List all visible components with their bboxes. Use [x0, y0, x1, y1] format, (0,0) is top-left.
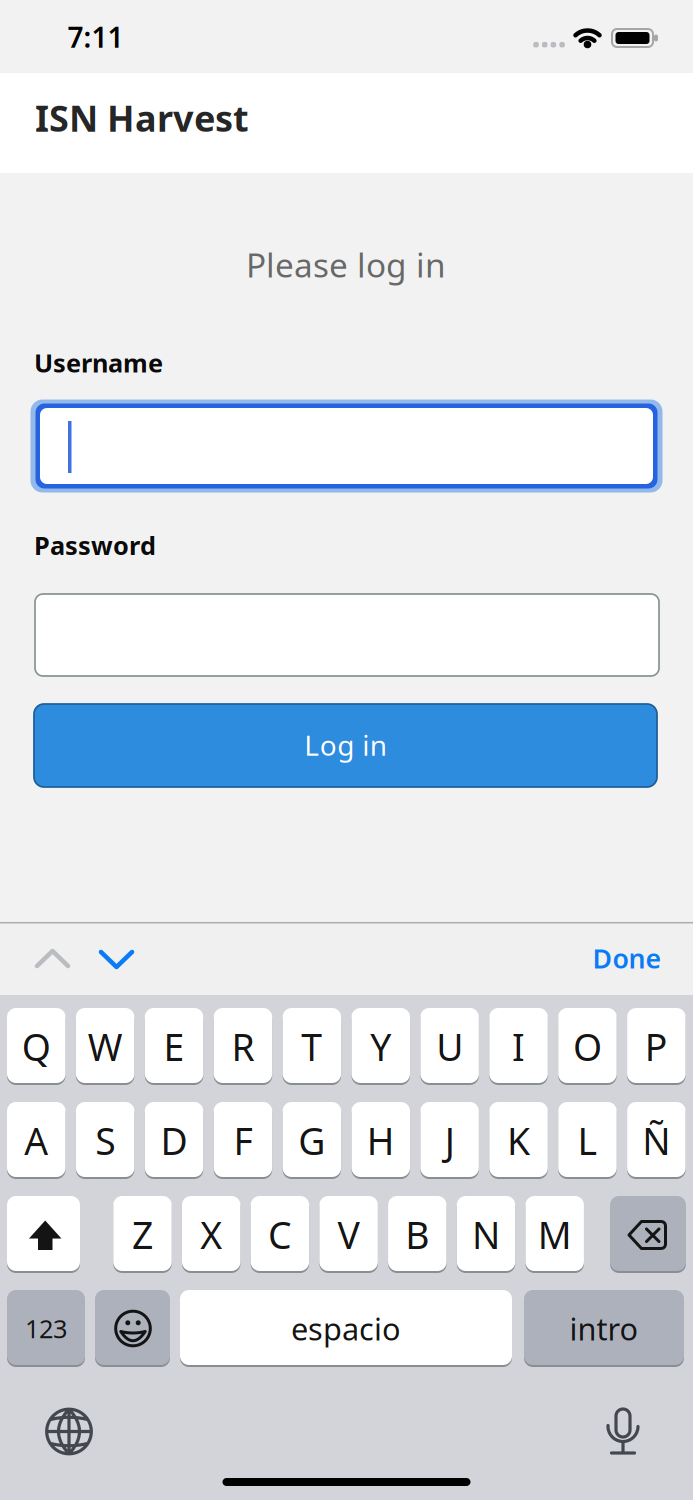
button[interactable]: L [558, 1102, 617, 1177]
button[interactable]: I [489, 1008, 548, 1083]
button[interactable]: O [558, 1008, 617, 1083]
staticText: O [573, 1022, 602, 1071]
staticText: N [472, 1210, 500, 1259]
button[interactable]: Ñ [627, 1102, 686, 1177]
button[interactable]: U [420, 1008, 479, 1083]
staticText: Password [34, 528, 156, 562]
staticText: 123 [25, 1312, 67, 1345]
button[interactable]: Next keyboard [41, 1403, 97, 1459]
button[interactable]: Emoji [95, 1290, 170, 1365]
button[interactable]: Z [113, 1196, 172, 1271]
staticText: Username [34, 346, 163, 379]
staticText: espacio [291, 1308, 401, 1349]
button[interactable]: N [457, 1196, 515, 1271]
staticText: 7:11 [67, 18, 123, 56]
staticText: P [645, 1022, 668, 1071]
staticText: L [577, 1116, 597, 1165]
staticText: R [231, 1022, 254, 1071]
button[interactable]: 123 [7, 1290, 85, 1365]
button[interactable]: Previous field [30, 936, 74, 980]
staticText: ISN Harvest [35, 94, 249, 142]
staticText: G [298, 1116, 325, 1165]
staticText: Q [22, 1022, 51, 1071]
staticText: Ñ [642, 1116, 670, 1165]
staticText: M [538, 1210, 572, 1259]
staticText: Z [132, 1210, 153, 1259]
staticText: intro [569, 1308, 638, 1349]
button[interactable]: P [627, 1008, 686, 1083]
button[interactable]: Shift [7, 1196, 80, 1271]
button[interactable]: S [76, 1102, 134, 1177]
button[interactable]: A [7, 1102, 65, 1177]
button[interactable]: T [283, 1008, 341, 1083]
button[interactable]: Delete [610, 1196, 686, 1271]
staticText: C [268, 1210, 292, 1259]
staticText: T [301, 1022, 322, 1071]
button[interactable]: F [214, 1102, 272, 1177]
staticText: Log in [304, 726, 387, 763]
staticText: A [24, 1116, 48, 1165]
button[interactable]: Password [35, 594, 659, 676]
button[interactable]: B [388, 1196, 447, 1271]
button[interactable]: Next field [94, 937, 138, 981]
button[interactable]: M [525, 1196, 584, 1271]
staticText: S [95, 1116, 115, 1165]
staticText: X [200, 1210, 222, 1259]
button[interactable]: Username [30, 399, 662, 492]
staticText: H [367, 1116, 395, 1165]
staticText: U [436, 1022, 463, 1071]
button[interactable]: W [76, 1008, 134, 1083]
button[interactable]: H [351, 1102, 410, 1177]
staticText: Y [370, 1022, 391, 1071]
button[interactable]: Log in [34, 704, 657, 787]
button[interactable]: espacio [180, 1290, 512, 1365]
button[interactable]: Y [351, 1008, 410, 1083]
button[interactable]: R [214, 1008, 272, 1083]
staticText: Done [592, 940, 661, 976]
button[interactable]: C [251, 1196, 309, 1271]
button[interactable]: intro [524, 1290, 684, 1365]
staticText: V [338, 1210, 360, 1259]
button[interactable]: X [182, 1196, 240, 1271]
staticText: I [512, 1022, 525, 1071]
button[interactable]: E [145, 1008, 203, 1083]
button[interactable]: K [489, 1102, 548, 1177]
staticText: W [88, 1022, 123, 1071]
staticText: D [161, 1116, 188, 1165]
button[interactable]: V [319, 1196, 378, 1271]
button[interactable]: Q [7, 1008, 65, 1083]
staticText: K [507, 1116, 530, 1165]
staticText: F [233, 1116, 252, 1165]
staticText: J [445, 1116, 455, 1165]
staticText: B [405, 1210, 429, 1259]
button[interactable]: Dictation [601, 1402, 645, 1458]
button[interactable]: D [145, 1102, 203, 1177]
button[interactable]: J [420, 1102, 479, 1177]
staticText: E [164, 1022, 185, 1071]
staticText: Please log in [246, 242, 446, 287]
button[interactable]: Done [577, 936, 677, 980]
button[interactable]: G [283, 1102, 341, 1177]
